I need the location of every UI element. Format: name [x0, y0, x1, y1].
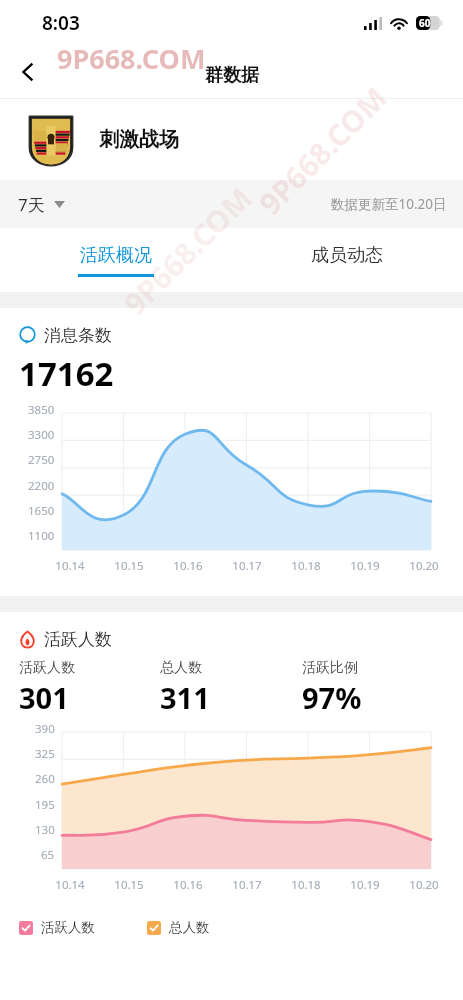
staticText: 60 [419, 16, 431, 30]
staticText: 9P668.COM [115, 178, 260, 323]
staticText: 2200 [28, 478, 55, 494]
staticText: 7天 [18, 193, 45, 216]
staticText: 数据更新至10.20日 [331, 195, 447, 213]
staticText: 10.16 [173, 558, 203, 574]
staticText: 10.15 [114, 877, 144, 893]
staticText: 10.14 [55, 877, 85, 893]
staticText: 311 [160, 678, 210, 717]
staticText: 10.16 [173, 877, 203, 893]
staticText: 1650 [28, 503, 55, 519]
button[interactable]: 刺激战场 [0, 99, 463, 180]
staticText: 活跃概况 [80, 244, 152, 267]
staticText: 195 [35, 797, 55, 813]
staticText: 10.17 [232, 877, 262, 893]
staticText: 10.14 [55, 558, 85, 574]
staticText: 活跃人数 [19, 659, 75, 677]
staticText: 1100 [28, 528, 55, 544]
staticText: 总人数 [169, 919, 210, 936]
staticText: 3850 [28, 402, 55, 418]
staticText: 65 [41, 847, 55, 863]
staticText: 17162 [19, 351, 114, 396]
staticText: 活跃比例 [302, 659, 358, 677]
staticText: 301 [19, 678, 69, 717]
staticText: 10.17 [232, 558, 262, 574]
staticText: 10.20 [409, 877, 439, 893]
button[interactable]: 成员动态 [231, 228, 463, 292]
button[interactable]: 总人数 [143, 915, 214, 940]
staticText: 群数据 [205, 64, 259, 87]
staticText: 10.18 [291, 877, 321, 893]
button[interactable]: 活跃人数 [15, 915, 99, 940]
staticText: 130 [35, 822, 55, 838]
staticText: 活跃人数 [41, 919, 95, 936]
staticText: 260 [35, 771, 55, 787]
staticText: 活跃人数 [44, 629, 112, 650]
staticText: 刺激战场 [99, 127, 179, 152]
button[interactable]: 活跃概况 [0, 228, 231, 292]
staticText: 10.20 [409, 558, 439, 574]
staticText: 8:03 [42, 10, 80, 36]
staticText: 10.19 [350, 877, 380, 893]
staticText: 消息条数 [44, 325, 112, 346]
staticText: 9P668.COM [250, 78, 395, 223]
staticText: 9P668.COM [57, 40, 206, 77]
staticText: 成员动态 [311, 244, 383, 267]
staticText: 2750 [28, 452, 55, 468]
button[interactable]: Back [6, 50, 50, 94]
staticText: 10.19 [350, 558, 380, 574]
staticText: 97% [302, 678, 362, 717]
staticText: 325 [35, 746, 55, 762]
staticText: 3300 [28, 427, 55, 443]
staticText: 390 [35, 721, 55, 737]
staticText: 10.18 [291, 558, 321, 574]
button[interactable]: 7天 [14, 187, 69, 222]
staticText: 10.15 [114, 558, 144, 574]
staticText: 总人数 [160, 659, 202, 677]
